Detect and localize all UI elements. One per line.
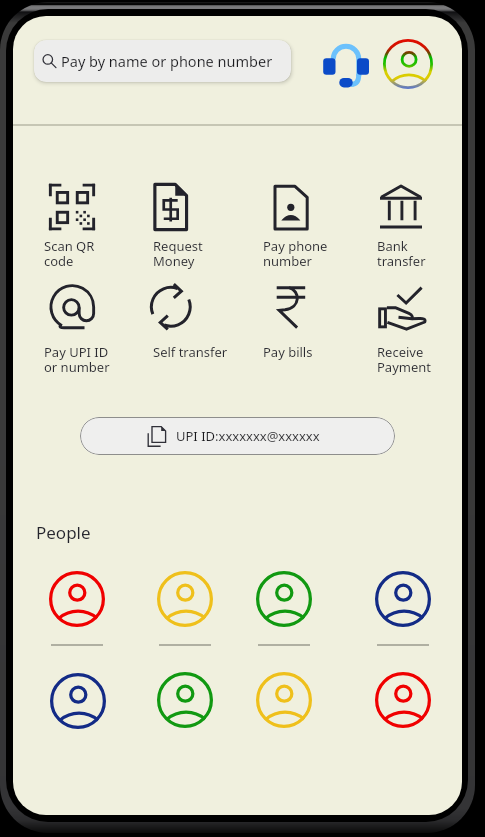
button[interactable]: Pay bills xyxy=(263,283,368,355)
staticText: People xyxy=(36,521,91,544)
button[interactable]: Request Money xyxy=(153,183,258,255)
button[interactable]: Contact xyxy=(151,565,219,655)
button[interactable]: Contact xyxy=(369,666,437,756)
button[interactable]: Contact xyxy=(44,667,112,757)
staticText: UPI ID:xxxxxxx@xxxxxx xyxy=(176,427,320,445)
button[interactable]: Pay UPI ID or number xyxy=(44,283,149,355)
button[interactable]: Self transfer xyxy=(153,283,258,355)
staticText: Pay phone number xyxy=(263,237,328,270)
button[interactable]: Bank transfer xyxy=(377,183,462,255)
staticText: Scan QR code xyxy=(44,237,95,270)
button[interactable]: Pay phone number xyxy=(263,183,368,255)
button[interactable]: Profile xyxy=(383,39,433,89)
staticText: Pay bills xyxy=(263,343,313,361)
button[interactable]: Scan QR code xyxy=(44,183,149,255)
button[interactable]: Receive Payment xyxy=(377,283,462,355)
button[interactable]: Customer support xyxy=(320,40,372,92)
button[interactable]: Pay by name or phone number xyxy=(34,40,291,82)
button[interactable]: Contact xyxy=(250,666,318,756)
button[interactable]: Contact xyxy=(250,565,318,655)
button[interactable]: UPI ID:xxxxxxx@xxxxxx xyxy=(80,417,395,455)
staticText: Receive Payment xyxy=(377,343,432,376)
staticText: Self transfer xyxy=(153,343,228,361)
button[interactable]: Contact xyxy=(369,565,437,655)
staticText: Request Money xyxy=(153,237,203,270)
button[interactable]: Contact xyxy=(43,565,111,655)
button[interactable]: Contact xyxy=(151,666,219,756)
staticText: Pay UPI ID or number xyxy=(44,343,110,376)
staticText: Bank transfer xyxy=(377,237,426,270)
staticText: Pay by name or phone number xyxy=(61,51,273,71)
